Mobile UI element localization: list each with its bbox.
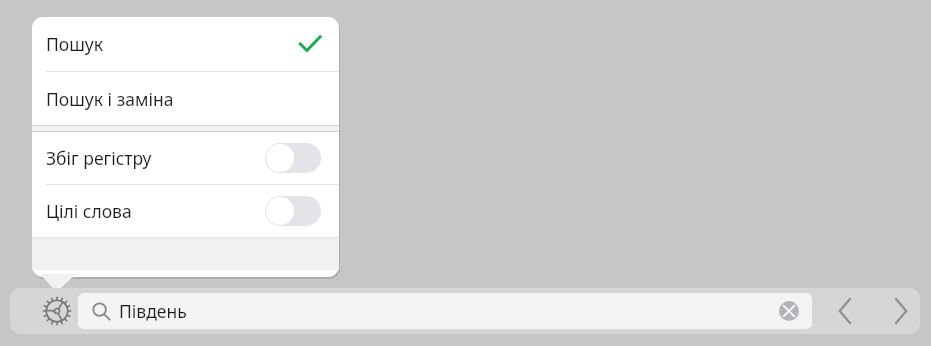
button[interactable]: Цілі слова	[32, 185, 339, 237]
staticText: Південь	[119, 299, 187, 323]
staticText: Пошук	[46, 32, 104, 56]
staticText: Пошук і заміна	[46, 87, 174, 111]
button[interactable]: Previous result	[822, 288, 868, 334]
button[interactable]: Південь	[78, 293, 812, 329]
button[interactable]: Search settings	[34, 288, 80, 334]
button[interactable]: Next result	[878, 288, 920, 334]
staticText: Збіг регістру	[46, 146, 152, 170]
button[interactable]: Пошук	[32, 17, 339, 71]
staticText: Цілі слова	[46, 199, 132, 223]
button[interactable]: Збіг регістру	[32, 132, 339, 184]
button[interactable]: Clear search	[776, 298, 802, 324]
button[interactable]: Пошук і заміна	[32, 72, 339, 125]
